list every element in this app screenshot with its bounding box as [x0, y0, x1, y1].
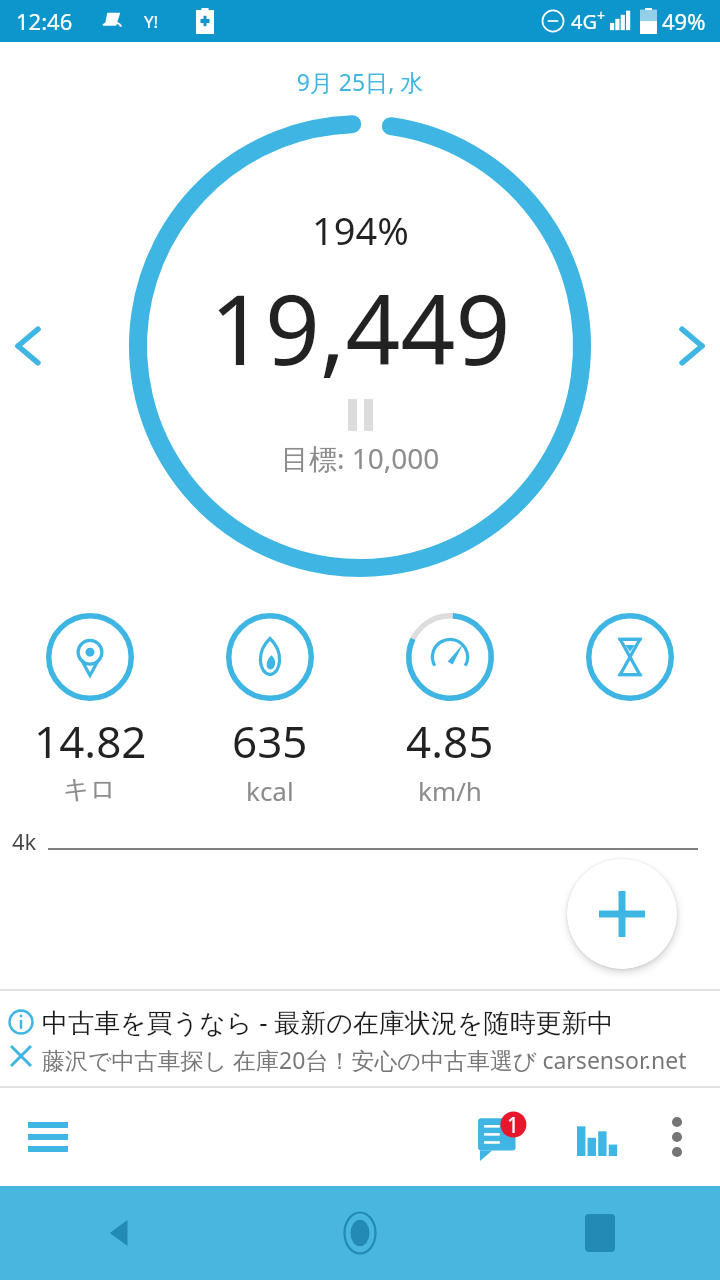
- button[interactable]: Ad info: [0, 990, 720, 1088]
- button[interactable]: Distance: [0, 611, 180, 808]
- button[interactable]: Previous day: [6, 311, 50, 381]
- staticText: 4k: [12, 826, 37, 856]
- button[interactable]: Add: [567, 859, 677, 969]
- staticText: 12:46: [16, 6, 73, 36]
- staticText: +: [597, 6, 606, 25]
- other: Speed: [406, 613, 494, 701]
- button[interactable]: Recent apps: [480, 1186, 720, 1280]
- button[interactable]: Home: [240, 1186, 480, 1280]
- staticText: Y!: [144, 10, 159, 33]
- staticText: 目標: 10,000: [281, 439, 440, 477]
- button[interactable]: Speed: [360, 611, 540, 810]
- other: Distance: [46, 613, 134, 701]
- staticText: km/h: [418, 773, 482, 808]
- other: Calories: [226, 613, 314, 701]
- staticText: 635: [232, 711, 308, 771]
- staticText: 49%: [662, 6, 706, 36]
- staticText: 4G: [571, 8, 597, 35]
- staticText: 4.85: [406, 711, 494, 771]
- button[interactable]: Ad info: [4, 1005, 38, 1039]
- other: Duration: [586, 613, 674, 701]
- button[interactable]: More options: [646, 1106, 708, 1168]
- staticText: 194%: [312, 204, 409, 256]
- button[interactable]: Calories: [180, 611, 360, 810]
- button[interactable]: Statistics: [564, 1103, 632, 1171]
- staticText: 1: [507, 1111, 520, 1140]
- staticText: キロ: [63, 773, 117, 806]
- button[interactable]: Duration: [540, 611, 720, 703]
- button[interactable]: Close ad: [4, 1039, 38, 1073]
- button[interactable]: Menu: [16, 1105, 80, 1169]
- button[interactable]: Next day: [670, 311, 714, 381]
- staticText: 中古車を買うなら - 最新の在庫状況を随時更新中: [42, 1004, 614, 1040]
- staticText: 藤沢で中古車探し 在庫20台！安心の中古車選び carsensor.net: [42, 1044, 687, 1075]
- staticText: 19,449: [210, 262, 511, 393]
- button[interactable]: Back: [0, 1186, 240, 1280]
- staticText: 14.82: [34, 711, 147, 771]
- staticText: 9月 25日, 水: [0, 66, 720, 97]
- staticText: kcal: [246, 773, 294, 808]
- button[interactable]: Messages, 1 unread: [466, 1101, 538, 1173]
